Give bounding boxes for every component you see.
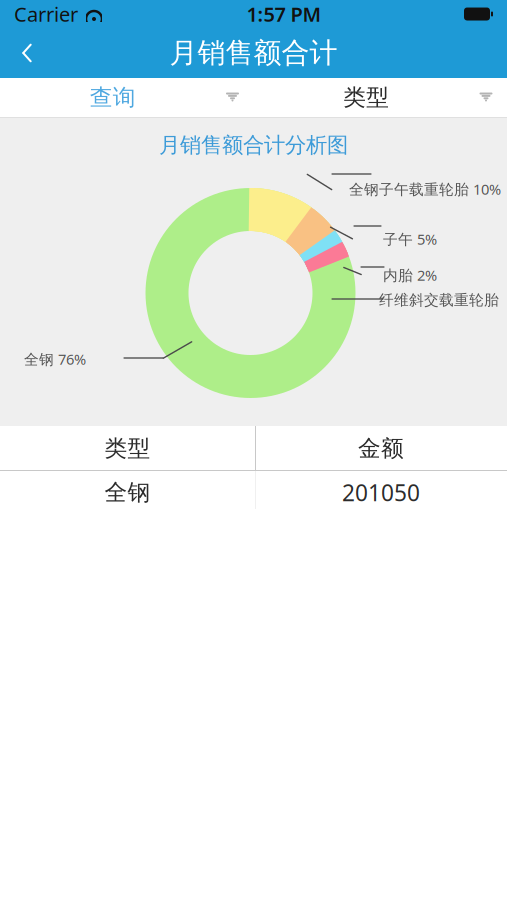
- staticText: 子午 5%: [383, 229, 437, 249]
- staticText: 全钢 76%: [24, 349, 86, 369]
- staticText: 类型: [343, 84, 389, 111]
- staticText: 月销售额合计分析图: [159, 132, 348, 158]
- button[interactable]: 全钢: [0, 471, 507, 514]
- staticText: 金额: [358, 435, 404, 462]
- staticText: 内胎 2%: [383, 265, 437, 285]
- staticText: 全钢子午载重轮胎 10%: [349, 179, 501, 199]
- staticText: 201050: [342, 477, 420, 507]
- staticText: Carrier: [14, 1, 78, 27]
- staticText: 全钢: [104, 479, 150, 506]
- button[interactable]: Back: [0, 28, 54, 78]
- staticText: 类型: [104, 435, 150, 462]
- staticText: 1:57 PM: [246, 1, 321, 27]
- button[interactable]: 查询: [0, 78, 253, 117]
- staticText: 月销售额合计: [169, 36, 337, 70]
- staticText: 纤维斜交载重轮胎: [379, 291, 499, 309]
- staticText: 查询: [90, 84, 136, 111]
- button[interactable]: 类型: [253, 78, 507, 117]
